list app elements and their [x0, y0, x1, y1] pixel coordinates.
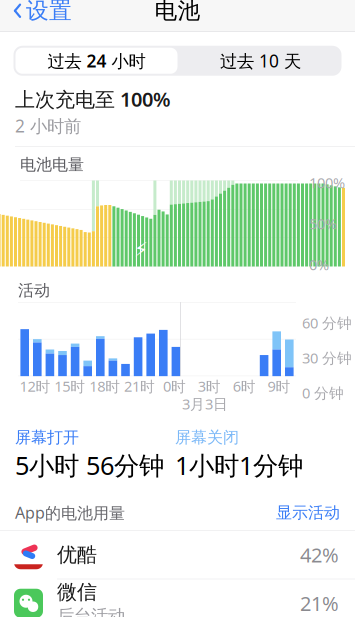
- staticText: 50%: [309, 214, 337, 233]
- staticText: App的电池用量: [15, 502, 125, 523]
- staticText: 12时: [19, 376, 50, 396]
- staticText: 5小时 56分钟: [15, 448, 164, 482]
- staticText: 设置: [26, 0, 72, 25]
- staticText: 21%: [300, 590, 339, 617]
- staticText: 21时: [124, 376, 155, 396]
- staticText: 屏幕关闭: [175, 428, 239, 447]
- button[interactable]: 微信: [0, 579, 355, 617]
- button[interactable]: 设置: [0, 0, 80, 32]
- staticText: 活动: [18, 280, 50, 300]
- staticText: 9时: [267, 376, 290, 396]
- staticText: 屏幕打开: [15, 428, 79, 447]
- staticText: 3时: [198, 376, 221, 396]
- staticText: 15时: [54, 376, 85, 396]
- button[interactable]: 过去 24 小时: [13, 46, 179, 76]
- staticText: 过去 10 天: [220, 49, 301, 72]
- button[interactable]: 优酷: [0, 531, 355, 579]
- staticText: 电池电量: [20, 155, 84, 174]
- staticText: 电池: [154, 0, 200, 25]
- staticText: 0%: [309, 255, 329, 274]
- staticText: 60 分钟: [302, 313, 352, 333]
- staticText: 上次充电至 100%: [15, 86, 171, 112]
- button[interactable]: 显示活动: [276, 503, 340, 522]
- staticText: 1小时1分钟: [175, 448, 303, 482]
- staticText: 0 分钟: [302, 383, 344, 403]
- staticText: 3月3日: [182, 394, 228, 414]
- staticText: 优酷: [57, 542, 97, 567]
- staticText: 2 小时前: [15, 114, 81, 137]
- staticText: 100%: [309, 173, 345, 192]
- staticText: 微信: [57, 580, 97, 604]
- staticText: 后台活动: [57, 605, 125, 617]
- staticText: 显示活动: [276, 503, 340, 522]
- staticText: 42%: [300, 541, 339, 568]
- staticText: 18时: [89, 376, 120, 396]
- staticText: 过去 24 小时: [47, 49, 145, 72]
- staticText: 0时: [163, 376, 186, 396]
- staticText: ⚡︎: [134, 238, 148, 261]
- staticText: 6时: [233, 376, 256, 396]
- staticText: 30 分钟: [302, 348, 352, 368]
- button[interactable]: 过去 10 天: [179, 46, 341, 76]
